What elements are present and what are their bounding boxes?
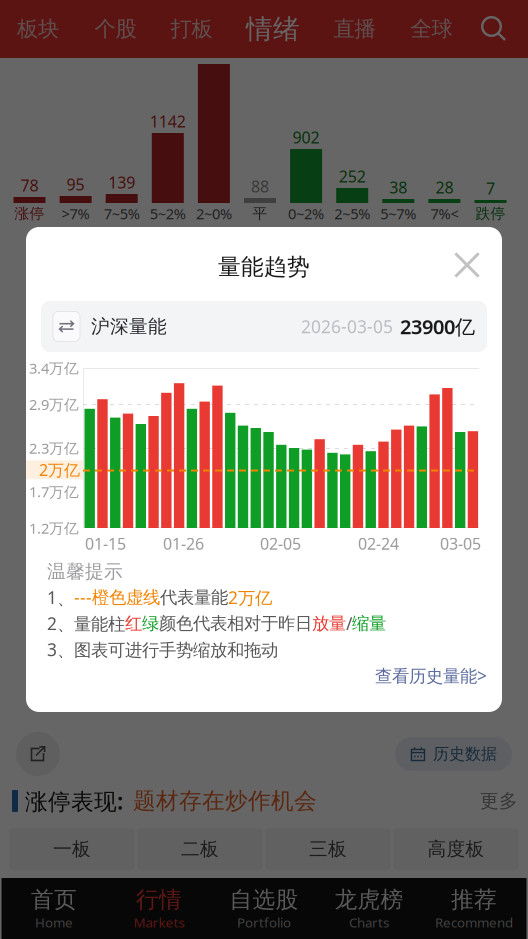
- staticText: 2万亿: [228, 586, 272, 609]
- staticText: ---: [74, 586, 92, 609]
- button[interactable]: 打板: [156, 0, 226, 58]
- button[interactable]: 分享: [16, 732, 60, 776]
- staticText: 02-24: [358, 533, 399, 554]
- staticText: 2、量能柱: [47, 612, 125, 635]
- button[interactable]: 搜索: [471, 0, 517, 58]
- staticText: 行情: [136, 886, 182, 913]
- staticText: 放量: [312, 613, 346, 634]
- button[interactable]: 一板: [9, 828, 134, 870]
- staticText: 个股: [94, 16, 136, 42]
- button[interactable]: 推荐: [421, 879, 526, 937]
- button[interactable]: 沪深量能: [41, 301, 487, 352]
- button[interactable]: 关闭: [443, 241, 491, 289]
- staticText: 28: [435, 177, 453, 198]
- staticText: Portfolio: [237, 914, 291, 931]
- staticText: 自选股: [229, 886, 298, 913]
- staticText: 涨停: [14, 204, 44, 222]
- staticText: 78: [20, 175, 38, 196]
- button[interactable]: 历史数据: [395, 737, 512, 771]
- staticText: 首页: [31, 886, 77, 913]
- staticText: 龙虎榜: [334, 886, 403, 913]
- staticText: 95: [67, 174, 85, 195]
- staticText: 3、图表可进行手势缩放和拖动: [47, 638, 278, 661]
- button[interactable]: 三板: [265, 828, 390, 870]
- staticText: 平: [252, 204, 267, 222]
- staticText: 更多: [480, 789, 518, 812]
- staticText: >7%: [62, 204, 90, 223]
- staticText: 沪深量能: [91, 315, 167, 338]
- staticText: 3.4万亿: [29, 358, 79, 378]
- button[interactable]: 龙虎榜: [316, 879, 421, 937]
- staticText: 01-15: [85, 533, 126, 554]
- staticText: 历史数据: [433, 744, 497, 764]
- staticText: Home: [35, 914, 73, 931]
- staticText: Markets: [133, 914, 184, 931]
- button[interactable]: 查看历史量能>: [372, 658, 490, 693]
- staticText: 打板: [170, 16, 212, 42]
- staticText: 2~0%: [196, 204, 232, 223]
- staticText: 5~2%: [150, 204, 186, 223]
- staticText: 高度板: [427, 837, 484, 860]
- staticText: 情绪: [246, 13, 300, 45]
- staticText: 全球: [410, 16, 452, 42]
- staticText: 2.9万亿: [29, 395, 79, 414]
- staticText: 38: [389, 177, 407, 198]
- staticText: 推荐: [451, 886, 497, 913]
- staticText: 红: [125, 613, 142, 634]
- button[interactable]: 个股: [80, 0, 150, 58]
- staticText: 代表量能: [160, 587, 228, 608]
- staticText: 1.7万亿: [29, 482, 79, 501]
- staticText: 绿: [142, 613, 159, 634]
- staticText: Charts: [349, 914, 389, 931]
- staticText: 直播: [333, 16, 375, 42]
- staticText: 1、: [47, 586, 74, 609]
- staticText: 三板: [309, 837, 347, 860]
- button[interactable]: 首页: [1, 879, 106, 937]
- staticText: 7: [486, 178, 495, 199]
- staticText: /: [346, 612, 352, 635]
- staticText: 1.2万亿: [29, 518, 79, 538]
- staticText: 涨停表现:: [25, 786, 123, 816]
- staticText: 01-26: [163, 533, 204, 554]
- staticText: 缩量: [352, 613, 386, 634]
- button[interactable]: 行情: [106, 879, 211, 937]
- staticText: 题材存在炒作机会: [133, 787, 317, 815]
- staticText: 2.3万亿: [29, 438, 79, 458]
- button[interactable]: 二板: [137, 828, 262, 870]
- staticText: 1142: [150, 111, 186, 132]
- staticText: 颜色代表相对于昨日: [159, 613, 312, 634]
- staticText: 一板: [53, 837, 91, 860]
- staticText: 2026-03-05: [301, 315, 393, 338]
- button[interactable]: 板块: [3, 0, 73, 58]
- button[interactable]: 高度板: [393, 828, 518, 870]
- staticText: 0~2%: [288, 204, 324, 223]
- staticText: 88: [251, 176, 269, 197]
- staticText: 252: [339, 166, 366, 187]
- staticText: 03-05: [440, 533, 481, 554]
- staticText: 板块: [17, 16, 59, 42]
- staticText: 温馨提示: [47, 560, 123, 583]
- staticText: 橙色虚线: [92, 587, 160, 608]
- staticText: 2万亿: [39, 459, 80, 480]
- staticText: 查看历史量能>: [375, 664, 487, 687]
- staticText: 23900亿: [400, 313, 475, 340]
- staticText: 二板: [181, 837, 219, 860]
- staticText: 7~5%: [104, 204, 140, 223]
- staticText: Recommend: [435, 914, 513, 931]
- staticText: 量能趋势: [218, 253, 310, 281]
- button[interactable]: 情绪: [238, 0, 308, 58]
- button[interactable]: 直播: [319, 0, 389, 58]
- button[interactable]: 全球: [396, 0, 466, 58]
- staticText: 139: [108, 172, 135, 193]
- staticText: 2~5%: [334, 204, 370, 223]
- staticText: 02-05: [260, 533, 301, 554]
- staticText: 5~7%: [380, 204, 416, 223]
- staticText: 7%<: [430, 204, 458, 223]
- button[interactable]: 自选股: [211, 879, 316, 937]
- staticText: 902: [293, 127, 320, 148]
- staticText: 跌停: [475, 204, 505, 222]
